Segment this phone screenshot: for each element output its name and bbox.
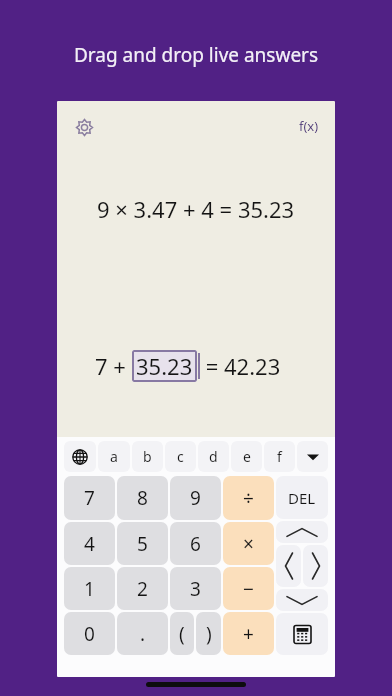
- staticText: ): [206, 621, 212, 647]
- staticText: c: [177, 447, 184, 466]
- button[interactable]: .: [117, 612, 168, 655]
- button[interactable]: 6: [170, 522, 221, 565]
- staticText: 3: [190, 576, 201, 602]
- button[interactable]: f: [264, 441, 295, 472]
- staticText: 1: [84, 576, 95, 602]
- button[interactable]: +: [223, 612, 274, 655]
- button[interactable]: 8: [117, 476, 168, 520]
- button[interactable]: Move down: [276, 589, 328, 611]
- button[interactable]: Move left: [276, 545, 301, 587]
- staticText: 9: [190, 485, 201, 511]
- staticText: .: [140, 621, 146, 647]
- staticText: d: [209, 447, 218, 466]
- button[interactable]: Language: [64, 441, 96, 472]
- staticText: 2: [137, 576, 148, 602]
- button[interactable]: a: [98, 441, 130, 472]
- button[interactable]: e: [231, 441, 262, 472]
- button[interactable]: 3: [170, 567, 221, 610]
- button[interactable]: 4: [64, 522, 115, 565]
- button[interactable]: 0: [64, 612, 115, 655]
- button[interactable]: ÷: [223, 476, 274, 520]
- button[interactable]: Functions: [296, 115, 322, 137]
- staticText: (: [179, 621, 185, 647]
- button[interactable]: b: [132, 441, 163, 472]
- button[interactable]: 35.23: [132, 350, 197, 382]
- staticText: a: [110, 447, 118, 466]
- staticText: 7: [84, 485, 95, 511]
- staticText: f(x): [299, 117, 319, 135]
- staticText: DEL: [288, 488, 316, 508]
- button[interactable]: Move up: [276, 521, 328, 543]
- button[interactable]: 5: [117, 522, 168, 565]
- button[interactable]: ×: [223, 522, 274, 565]
- button[interactable]: Settings: [71, 114, 98, 141]
- button[interactable]: 9: [170, 476, 221, 520]
- staticText: 5: [137, 531, 148, 557]
- button[interactable]: More: [297, 441, 328, 472]
- staticText: Drag and drop live answers: [0, 42, 392, 68]
- button[interactable]: Move right: [303, 545, 328, 587]
- staticText: 6: [190, 531, 201, 557]
- button[interactable]: 7: [64, 476, 115, 520]
- staticText: −: [243, 576, 254, 602]
- staticText: +: [243, 621, 254, 647]
- staticText: 4: [84, 531, 95, 557]
- button[interactable]: 2: [117, 567, 168, 610]
- button[interactable]: 1: [64, 567, 115, 610]
- staticText: b: [143, 447, 152, 466]
- button[interactable]: d: [198, 441, 229, 472]
- button[interactable]: Calculator: [276, 613, 328, 655]
- staticText: e: [243, 447, 251, 466]
- button[interactable]: (: [170, 612, 194, 655]
- staticText: 35.23: [136, 351, 193, 381]
- staticText: 9 × 3.47 + 4 = 35.23: [97, 194, 295, 224]
- staticText: ÷: [243, 485, 254, 511]
- button[interactable]: ): [196, 612, 221, 655]
- staticText: 7 +: [95, 351, 132, 381]
- button[interactable]: c: [165, 441, 196, 472]
- button[interactable]: −: [223, 567, 274, 610]
- staticText: = 42.23: [200, 351, 281, 381]
- staticText: 0: [84, 621, 95, 647]
- staticText: 8: [137, 485, 148, 511]
- staticText: f: [277, 447, 282, 466]
- button[interactable]: DEL: [276, 476, 328, 519]
- staticText: ×: [243, 531, 254, 557]
